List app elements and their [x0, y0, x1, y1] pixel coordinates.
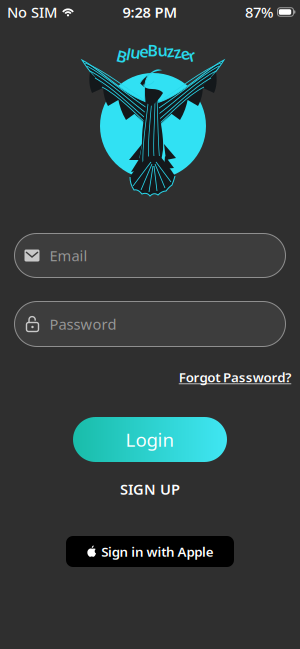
staticText: z: [173, 41, 181, 63]
staticText: e: [180, 43, 189, 64]
staticText: Forgot Password?: [179, 368, 291, 386]
staticText: u: [157, 40, 167, 61]
staticText: Email: [49, 246, 87, 265]
staticText: 9:28 PM: [122, 2, 177, 22]
staticText: 87%: [245, 2, 273, 22]
staticText: SIGN UP: [120, 479, 180, 499]
staticText: z: [166, 40, 174, 61]
button[interactable]: Sign in with Apple: [66, 536, 234, 567]
staticText: Password: [49, 314, 116, 334]
button[interactable]: Login: [73, 417, 227, 462]
staticText: B: [147, 40, 158, 61]
staticText: B: [116, 46, 127, 67]
staticText: l: [126, 43, 131, 65]
staticText: r: [188, 45, 195, 66]
button[interactable]: Email: [14, 233, 285, 277]
staticText: e: [139, 40, 148, 62]
staticText: No SIM: [7, 2, 57, 22]
button[interactable]: SIGN UP: [120, 479, 180, 499]
button[interactable]: Password: [14, 301, 285, 346]
staticText: Sign in with Apple: [101, 543, 214, 560]
staticText: u: [130, 42, 140, 63]
staticText: Login: [125, 427, 174, 452]
button[interactable]: Forgot Password?: [179, 368, 291, 386]
